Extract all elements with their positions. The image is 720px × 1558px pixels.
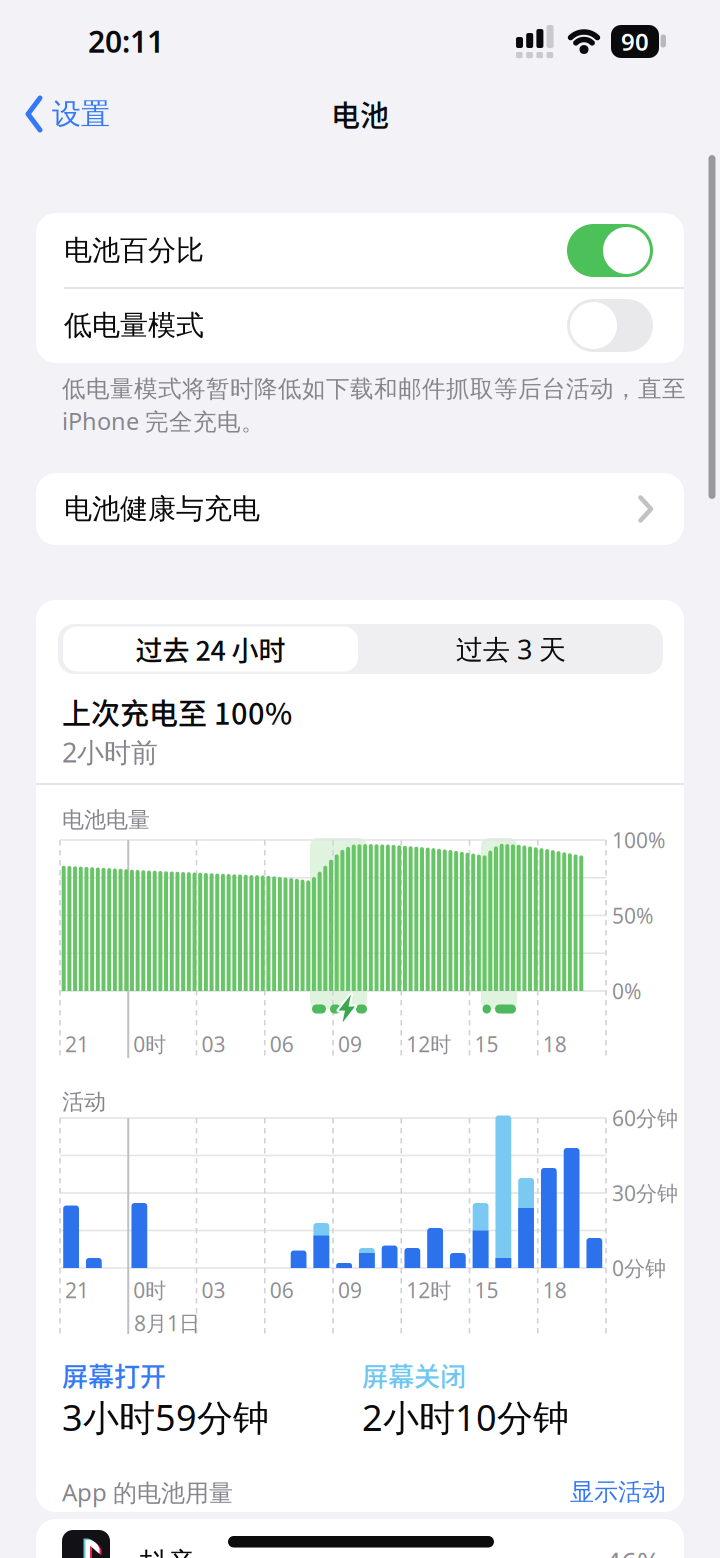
staticText: 09 xyxy=(338,1030,362,1058)
staticText: 30分钟 xyxy=(612,1179,678,1207)
button[interactable]: 过去 24 小时 xyxy=(63,626,358,671)
staticText: 电池 xyxy=(331,93,389,134)
staticText: 抖音 xyxy=(140,1546,196,1558)
staticText: 电池电量 xyxy=(62,806,150,833)
staticText: 12时 xyxy=(406,1276,451,1304)
staticText: 18 xyxy=(543,1030,567,1058)
staticText: 过去 24 小时 xyxy=(135,630,285,668)
staticText: 100% xyxy=(612,826,665,854)
staticText: 18 xyxy=(543,1276,567,1304)
staticText: 0% xyxy=(612,977,641,1005)
staticText: 21 xyxy=(65,1276,89,1304)
staticText: 20:11 xyxy=(88,21,164,61)
button[interactable]: 低电量模式 xyxy=(567,299,653,352)
staticText: 上次充电至 100% xyxy=(62,691,292,732)
staticText: 0分钟 xyxy=(612,1254,666,1282)
staticText: 3小时59分钟 xyxy=(62,1393,269,1441)
staticText: 2小时10分钟 xyxy=(362,1393,569,1441)
staticText: 06 xyxy=(270,1030,294,1058)
staticText: 屏幕打开 xyxy=(62,1357,166,1393)
button[interactable]: 抖音 xyxy=(36,1519,684,1558)
staticText: 90 xyxy=(621,26,649,57)
button[interactable]: 电池健康与充电 xyxy=(36,473,684,545)
staticText: iPhone 完全充电。 xyxy=(62,405,265,437)
staticText: 8月1日 xyxy=(134,1309,200,1337)
staticText: 0时 xyxy=(133,1276,166,1304)
staticText: 46% xyxy=(605,1543,660,1558)
staticText: 低电量模式将暂时降低如下载和邮件抓取等后台活动，直至 xyxy=(62,375,686,403)
button[interactable]: 过去 3 天 xyxy=(363,626,658,671)
staticText: 屏幕关闭 xyxy=(362,1357,466,1393)
staticText: 电池健康与充电 xyxy=(64,492,260,526)
staticText: 15 xyxy=(474,1030,498,1058)
staticText: 0时 xyxy=(133,1030,166,1058)
staticText: App 的电池用量 xyxy=(62,1476,233,1508)
staticText: 15 xyxy=(474,1276,498,1304)
staticText: 03 xyxy=(201,1276,225,1304)
staticText: 21 xyxy=(65,1030,89,1058)
button[interactable]: 显示活动 xyxy=(466,1477,666,1507)
staticText: 03 xyxy=(201,1030,225,1058)
staticText: 低电量模式 xyxy=(64,308,204,343)
staticText: 06 xyxy=(270,1276,294,1304)
staticText: 显示活动 xyxy=(570,1477,666,1507)
staticText: 50% xyxy=(612,902,653,929)
staticText: 过去 3 天 xyxy=(456,631,566,667)
button[interactable]: 电池百分比 xyxy=(567,224,653,277)
staticText: 电池百分比 xyxy=(64,233,204,268)
staticText: 设置 xyxy=(52,96,110,132)
staticText: 09 xyxy=(338,1276,362,1304)
button[interactable]: 返回设置 xyxy=(26,95,110,132)
staticText: 60分钟 xyxy=(612,1104,678,1132)
staticText: 2小时前 xyxy=(62,734,158,770)
staticText: 12时 xyxy=(406,1030,451,1058)
staticText: 活动 xyxy=(62,1088,106,1115)
